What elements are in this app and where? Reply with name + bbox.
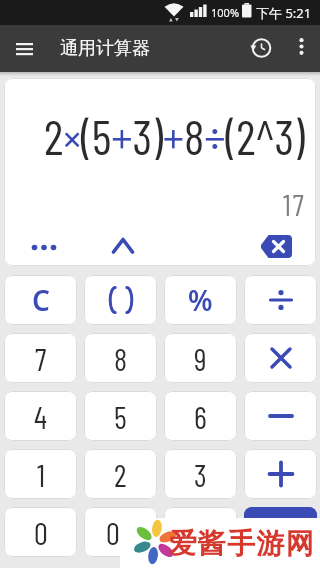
staticText: 6 [194, 398, 207, 435]
staticText: 下午 5:21 [256, 4, 312, 22]
button[interactable] [8, 32, 42, 66]
staticText: 0 [34, 514, 48, 551]
button[interactable]: . [164, 507, 237, 557]
staticText: 2×(5+3)+8÷(2^3) [44, 107, 305, 165]
staticText: 1 [37, 456, 45, 493]
button[interactable] [244, 333, 317, 383]
button[interactable]: % [164, 275, 237, 325]
button[interactable]: 2 [84, 449, 157, 499]
button[interactable] [244, 31, 278, 65]
button[interactable] [20, 230, 68, 264]
button[interactable]: 0 [4, 507, 77, 557]
button[interactable] [286, 31, 316, 61]
staticText: 5 [114, 398, 127, 435]
button[interactable]: 7 [4, 333, 77, 383]
button[interactable]: 5 [84, 391, 157, 441]
button[interactable]: C [4, 275, 77, 325]
button[interactable]: 1 [4, 449, 77, 499]
staticText: 9 [194, 340, 207, 377]
staticText: 3 [194, 456, 207, 493]
staticText: 通用计算器 [60, 37, 150, 60]
staticText: = [274, 514, 288, 551]
staticText: 2 [114, 456, 127, 493]
staticText: 17 [283, 186, 306, 222]
staticText: C [32, 281, 50, 319]
button[interactable] [244, 275, 317, 325]
button[interactable] [84, 275, 157, 325]
button[interactable]: 9 [164, 333, 237, 383]
staticText: 7 [35, 340, 47, 377]
button[interactable]: 4 [4, 391, 77, 441]
staticText: 4 [34, 398, 47, 435]
staticText: 0 [106, 514, 120, 551]
button[interactable] [244, 391, 317, 441]
button[interactable]: 3 [164, 449, 237, 499]
staticText: 爱酱手游网 [168, 526, 314, 561]
staticText: 100% [211, 5, 240, 20]
staticText: . [198, 514, 204, 551]
button[interactable]: 8 [84, 333, 157, 383]
button[interactable]: 6 [164, 391, 237, 441]
button[interactable] [252, 226, 302, 266]
button[interactable]: = [244, 507, 317, 557]
staticText: % [188, 281, 213, 319]
button[interactable] [244, 449, 317, 499]
button[interactable]: 0 [84, 507, 157, 557]
button[interactable] [104, 228, 142, 264]
staticText: 8 [114, 340, 128, 377]
